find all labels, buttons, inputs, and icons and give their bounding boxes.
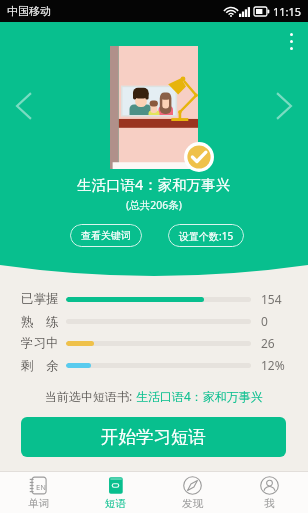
staticText: 11:15	[273, 4, 302, 19]
button[interactable]: EN	[0, 472, 77, 513]
button[interactable]: 查看关键词	[70, 224, 142, 247]
staticText: 生活口语4：家和万事兴	[77, 174, 231, 194]
staticText: (总共206条)	[126, 198, 182, 212]
staticText: 26	[261, 335, 275, 351]
staticText: 设置个数:15	[179, 229, 234, 243]
staticText: 熟 练	[21, 313, 59, 330]
staticText: 12%	[261, 357, 285, 373]
staticText: 学习中	[21, 335, 59, 351]
staticText: 查看关键词	[81, 229, 131, 242]
button[interactable]: 发现	[154, 472, 231, 513]
staticText: EN	[36, 482, 46, 492]
staticText: 单词	[28, 497, 49, 510]
button[interactable]: 短语	[77, 472, 154, 513]
button[interactable]: More options	[280, 30, 302, 52]
staticText: 已掌握	[21, 291, 59, 307]
staticText: 154	[261, 291, 282, 307]
button[interactable]: 开始学习短语	[21, 417, 286, 457]
staticText: 当前选中短语书:	[45, 388, 136, 404]
staticText: 中国移动	[7, 4, 51, 18]
button[interactable]: 设置个数:15	[168, 224, 244, 247]
button[interactable]: Previous book	[12, 89, 36, 123]
staticText: 0	[261, 313, 268, 329]
staticText: 发现	[182, 497, 203, 510]
button[interactable]: Next book	[272, 89, 296, 123]
button[interactable]: 我	[231, 472, 308, 513]
staticText: 开始学习短语	[101, 426, 206, 448]
staticText: 生活口语4：家和万事兴	[136, 388, 263, 404]
staticText: 剩 余	[21, 357, 59, 374]
staticText: 短语	[105, 497, 126, 510]
staticText: 我	[264, 497, 275, 510]
